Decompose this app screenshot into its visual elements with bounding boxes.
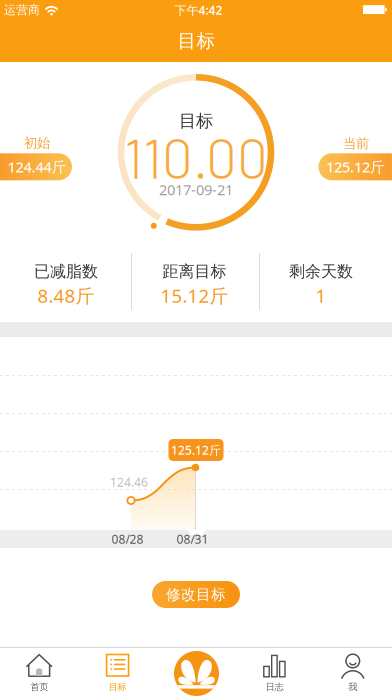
staticText: 目标: [109, 681, 127, 693]
button[interactable]: 记录: [174, 651, 219, 696]
staticText: 剩余天数: [289, 262, 353, 281]
button[interactable]: 首页: [0, 647, 78, 696]
staticText: 2017-09-21: [159, 180, 233, 199]
staticText: 目标: [179, 110, 213, 132]
staticText: 110.00: [124, 124, 268, 190]
staticText: 目标: [177, 29, 215, 52]
staticText: 距离目标: [162, 262, 226, 281]
button[interactable]: 目标: [79, 647, 157, 696]
staticText: 1: [315, 283, 326, 308]
staticText: 修改目标: [166, 585, 226, 603]
staticText: 我: [348, 681, 357, 693]
staticText: 124.44斤: [7, 157, 66, 177]
staticText: 15.12斤: [160, 283, 228, 308]
staticText: 125.12斤: [326, 157, 385, 177]
staticText: 125.12斤: [171, 442, 221, 458]
staticText: 当前: [343, 135, 369, 152]
button[interactable]: 我: [314, 647, 392, 696]
staticText: 08/28: [111, 531, 143, 547]
staticText: 下午4:42: [174, 2, 222, 18]
staticText: 8.48斤: [37, 283, 94, 308]
staticText: 初始: [24, 135, 50, 151]
button[interactable]: 日志: [235, 647, 313, 696]
button[interactable]: 修改目标: [152, 581, 240, 608]
staticText: 08/31: [176, 531, 208, 547]
staticText: 运营商: [4, 3, 40, 17]
staticText: 首页: [30, 681, 48, 693]
staticText: 124.46: [110, 474, 148, 490]
staticText: 已减脂数: [34, 262, 98, 281]
staticText: 日志: [265, 681, 283, 693]
